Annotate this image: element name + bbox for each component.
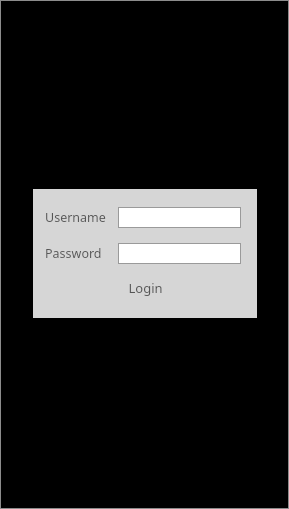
staticText: Login	[128, 279, 163, 297]
button[interactable]: Username input field	[118, 207, 241, 228]
button[interactable]: Login	[33, 276, 257, 300]
staticText: Username	[45, 209, 106, 226]
staticText: Password	[45, 245, 102, 262]
button[interactable]: Password input field	[118, 243, 241, 264]
